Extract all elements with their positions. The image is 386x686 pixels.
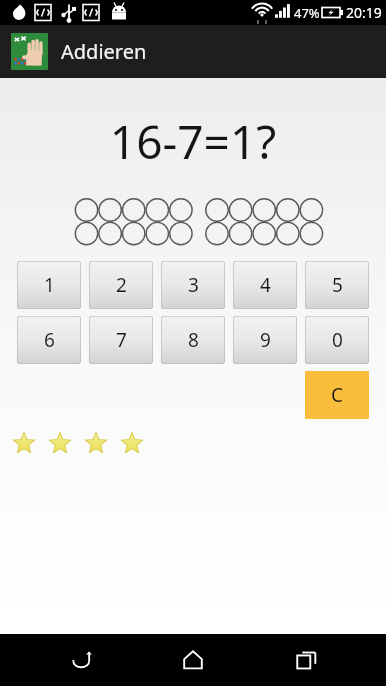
button[interactable]: 2 xyxy=(89,261,153,309)
button[interactable]: 4 xyxy=(233,261,297,309)
button[interactable]: 1 xyxy=(17,261,81,309)
staticText: 3 xyxy=(188,272,199,298)
staticText: 47% xyxy=(294,4,320,22)
button[interactable]: Home xyxy=(161,634,225,686)
button[interactable]: 6 xyxy=(17,316,81,364)
button[interactable]: 3 xyxy=(161,261,225,309)
button[interactable]: 8 xyxy=(161,316,225,364)
button[interactable]: 7 xyxy=(89,316,153,364)
staticText: 5 xyxy=(332,272,343,298)
staticText: C xyxy=(331,382,344,408)
staticText: Addieren xyxy=(61,38,147,65)
button[interactable]: 0 xyxy=(305,316,369,364)
button[interactable]: 9 xyxy=(233,316,297,364)
button[interactable]: 5 xyxy=(305,261,369,309)
staticText: 1 xyxy=(44,272,55,298)
staticText: 2 xyxy=(116,272,127,298)
staticText: 20:19 xyxy=(346,3,382,22)
staticText: 9 xyxy=(260,327,271,353)
staticText: 7 xyxy=(116,327,127,353)
button[interactable]: Recent apps xyxy=(274,634,338,686)
staticText: 4 xyxy=(260,272,271,298)
staticText: 6 xyxy=(44,327,55,353)
button[interactable]: Back xyxy=(49,634,113,686)
staticText: 8 xyxy=(188,327,199,353)
staticText: 16-7=1? xyxy=(0,110,386,173)
staticText: 0 xyxy=(332,327,343,353)
button[interactable]: C xyxy=(305,371,369,419)
